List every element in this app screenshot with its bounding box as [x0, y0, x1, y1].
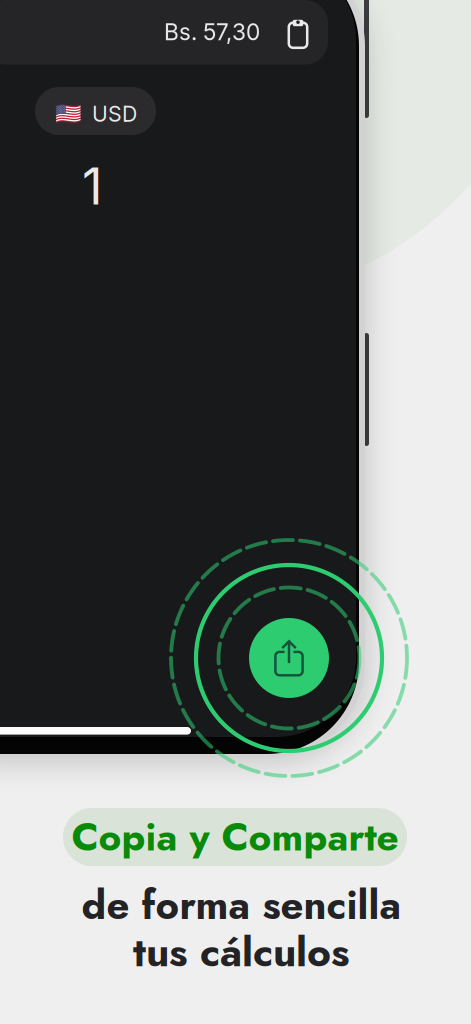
staticText: de forma sencilla: [81, 876, 401, 934]
staticText: tus cálculos: [133, 923, 350, 981]
staticText: USD: [92, 101, 137, 127]
staticText: 1: [82, 155, 103, 217]
button[interactable]: Currency: USD: [35, 87, 156, 135]
staticText: Bs. 57,30: [164, 18, 260, 46]
button[interactable]: Copy result: [275, 10, 321, 58]
staticText: Copia y Comparte: [71, 809, 398, 865]
staticText: 🇺🇸: [55, 101, 82, 126]
button[interactable]: Share: [249, 618, 329, 698]
